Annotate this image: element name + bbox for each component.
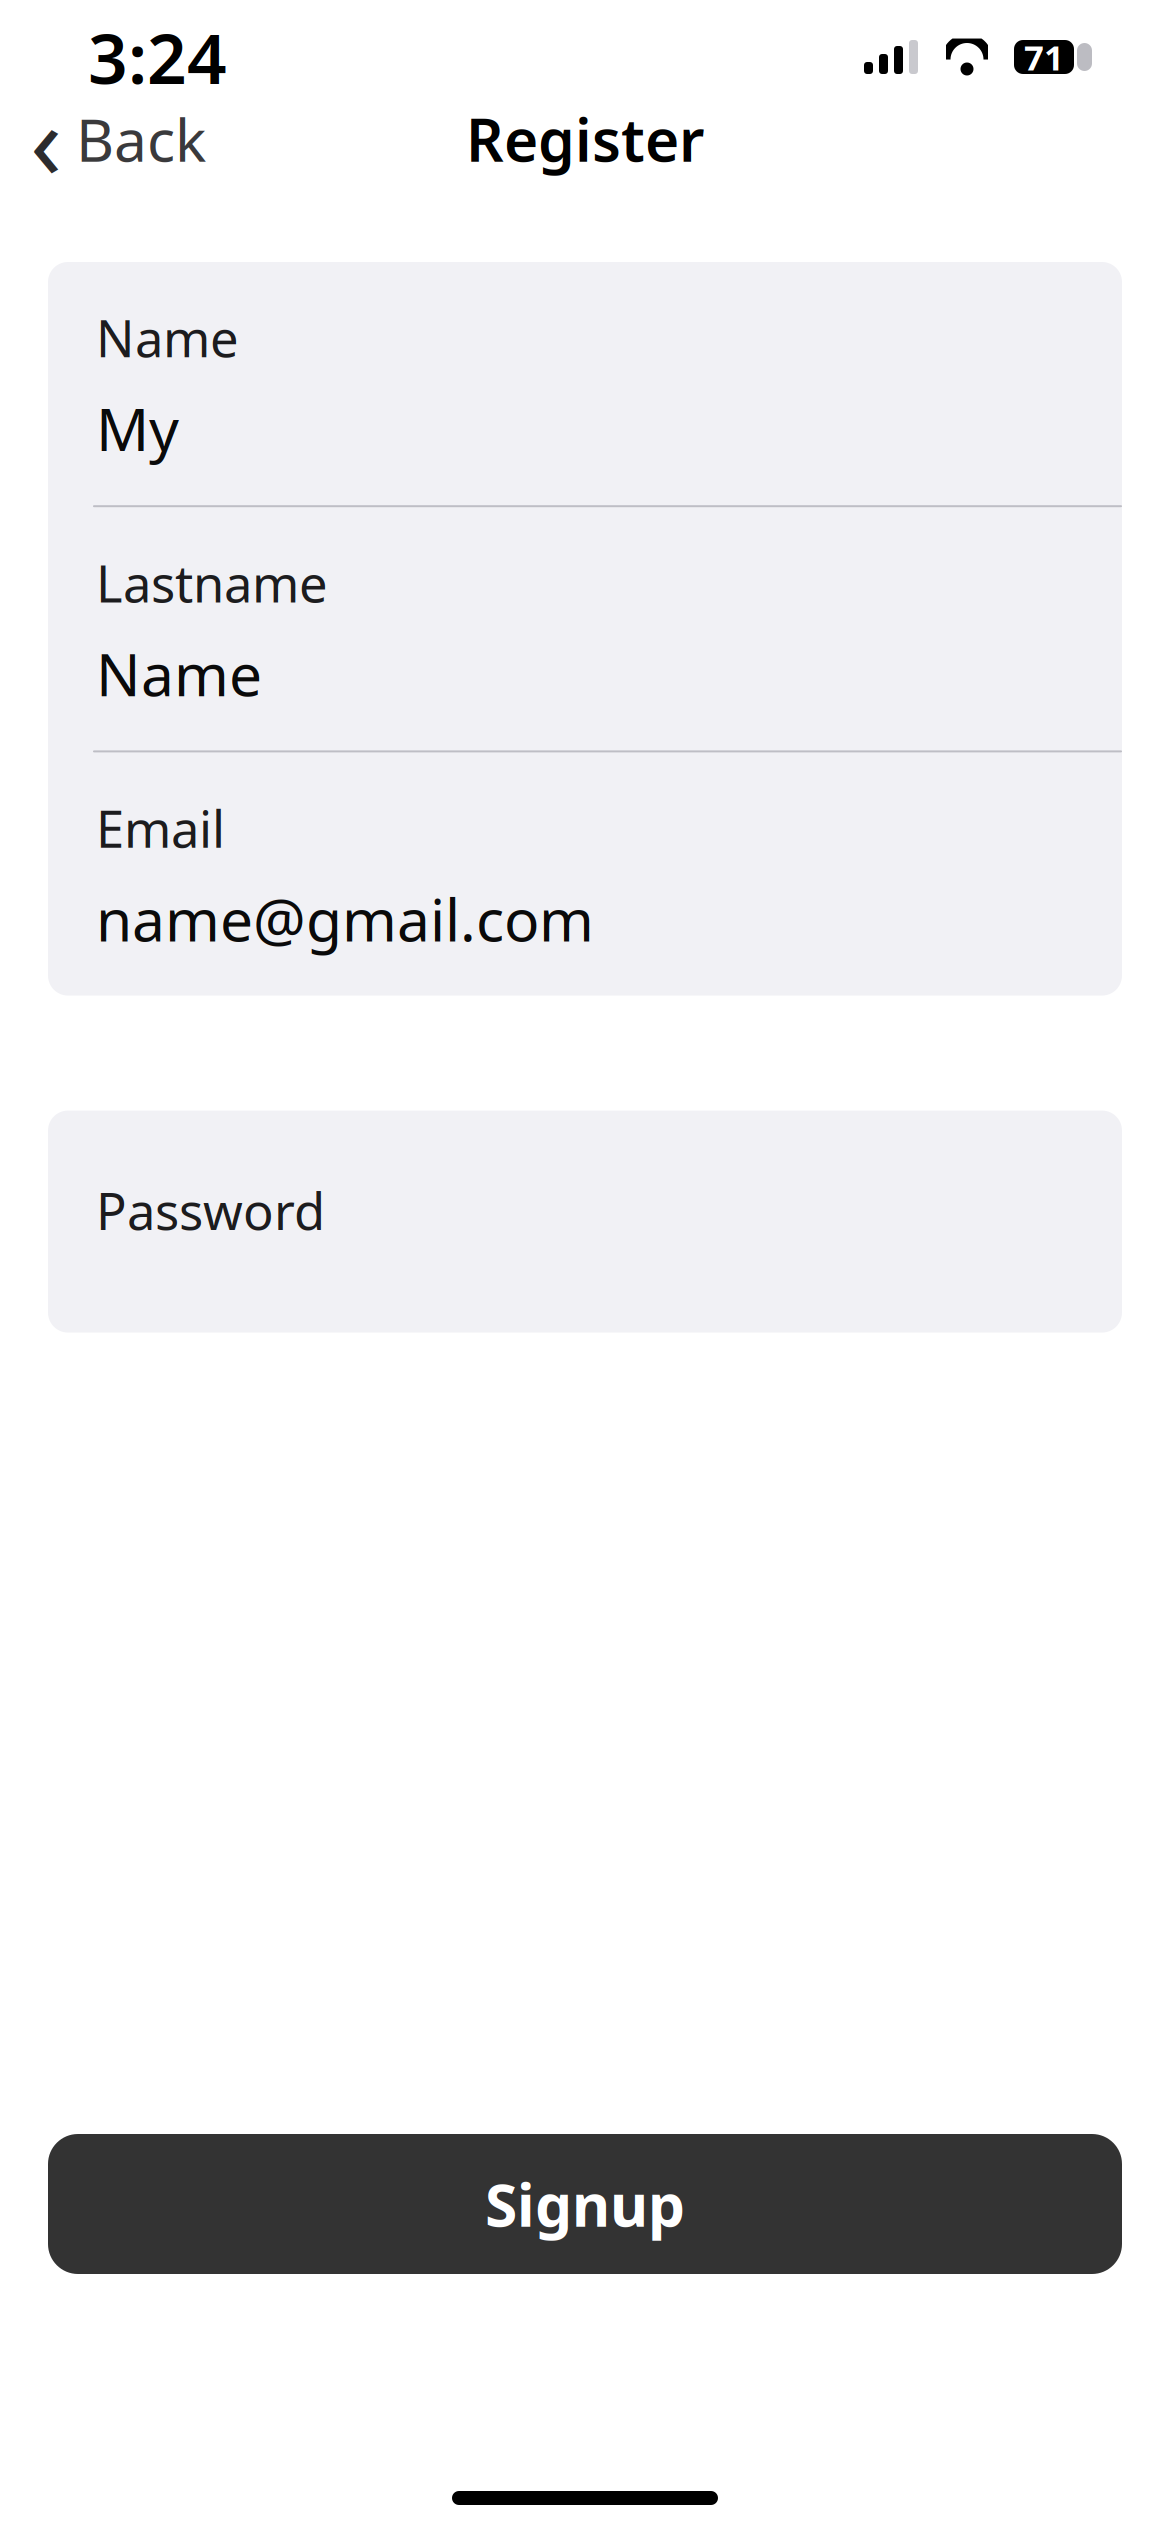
staticText: Lastname	[96, 549, 328, 616]
button[interactable]: Signup	[48, 2134, 1122, 2274]
staticText: Name	[96, 304, 239, 371]
staticText: My	[96, 389, 179, 467]
staticText: 71	[1024, 34, 1064, 80]
staticText: Name	[96, 634, 262, 712]
staticText: 3:24	[88, 11, 227, 103]
staticText: name@gmail.com	[96, 880, 594, 958]
staticText: Back	[76, 100, 206, 178]
staticText: Password	[96, 1177, 325, 1244]
staticText: ‹	[30, 70, 62, 208]
staticText: Signup	[485, 2165, 685, 2243]
staticText: Register	[466, 100, 704, 178]
staticText: Email	[96, 794, 225, 862]
button[interactable]: ‹	[8, 64, 228, 214]
